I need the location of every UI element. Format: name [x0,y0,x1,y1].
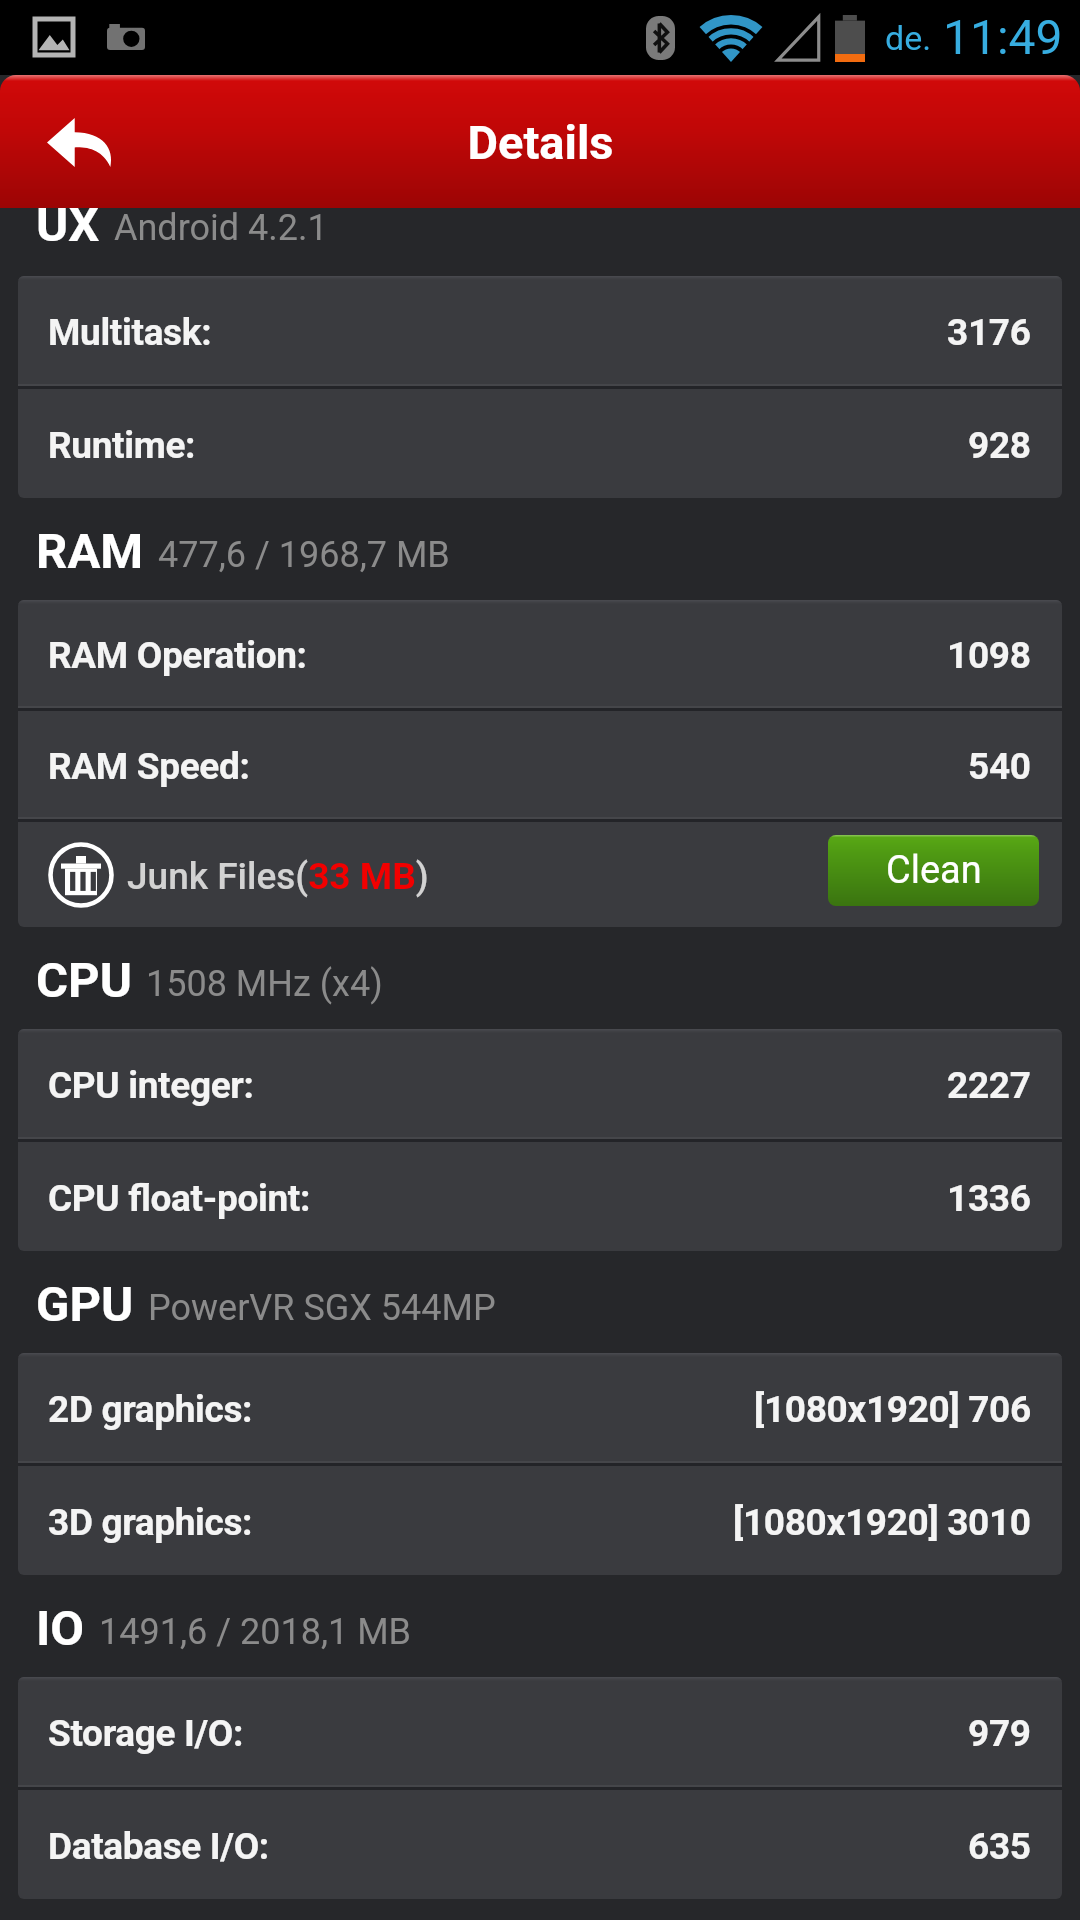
staticText: 1491,6 / 2018,1 MB [99,1611,411,1653]
staticText: [1080x1920] 706 [754,1388,1031,1431]
button[interactable]: RAM Operation: [18,600,1062,706]
staticText: 928 [968,424,1031,467]
staticText: de. [885,18,932,58]
button[interactable]: Junk Files(33 MB) [18,822,1062,927]
staticText: 2D graphics: [48,1388,253,1431]
staticText: 2227 [947,1064,1031,1107]
staticText: 1336 [947,1177,1031,1220]
staticText: Runtime: [48,424,196,467]
staticText: 1508 MHz (x4) [146,963,383,1005]
button[interactable]: CPU float-point: [18,1142,1062,1251]
staticText: 3D graphics: [48,1501,253,1544]
button[interactable]: Storage I/O: [18,1677,1062,1785]
staticText: [1080x1920] 3010 [733,1501,1031,1544]
staticText: CPU [36,952,132,1009]
staticText: Junk Files(33 MB) [127,855,429,898]
staticText: IO [36,1600,85,1657]
button[interactable]: CPU integer: [18,1029,1062,1137]
staticText: GPU [36,1276,134,1333]
staticText: 635 [968,1825,1031,1868]
button[interactable]: RAM Speed: [18,711,1062,817]
staticText: 11:49 [943,9,1063,65]
staticText: RAM [36,523,144,580]
staticText: Android 4.2.1 [114,207,328,249]
staticText: Storage I/O: [48,1712,244,1755]
staticText: CPU float-point: [48,1177,311,1220]
staticText: Multitask: [48,311,212,354]
staticText: PowerVR SGX 544MP [148,1287,496,1329]
staticText: Database I/O: [48,1825,269,1868]
staticText: CPU integer: [48,1064,254,1107]
staticText: UX [36,196,100,253]
staticText: 540 [968,745,1031,788]
staticText: 979 [968,1712,1031,1755]
button[interactable]: 3D graphics: [18,1466,1062,1575]
button[interactable]: 2D graphics: [18,1353,1062,1461]
staticText: Details [467,115,614,170]
button[interactable]: Runtime: [18,389,1062,498]
staticText: RAM Operation: [48,634,307,677]
button[interactable]: Database I/O: [18,1790,1062,1899]
button[interactable]: Multitask: [18,276,1062,384]
staticText: RAM Speed: [48,745,250,788]
staticText: 1098 [947,634,1031,677]
button[interactable]: Back [17,75,143,208]
staticText: 3176 [947,311,1031,354]
button[interactable]: Clean [828,835,1039,906]
staticText: 477,6 / 1968,7 MB [158,534,450,576]
staticText: Clean [886,848,982,893]
